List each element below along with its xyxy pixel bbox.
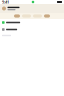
- staticText: 9:41: [2, 0, 9, 5]
